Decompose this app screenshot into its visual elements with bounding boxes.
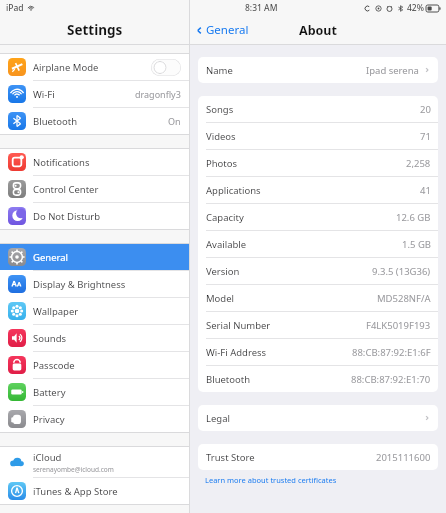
- staticText: iCloud: [33, 451, 62, 464]
- staticText: Available: [206, 238, 247, 251]
- button[interactable]: Available: [198, 231, 438, 257]
- button[interactable]: iCloud: [0, 447, 189, 477]
- staticText: 8:31 AM: [245, 2, 278, 14]
- staticText: iTunes & App Store: [33, 485, 118, 498]
- button[interactable]: Serial Number: [198, 312, 438, 338]
- staticText: General: [33, 251, 69, 264]
- button[interactable]: Songs: [198, 96, 438, 122]
- staticText: Trust Store: [206, 451, 255, 464]
- staticText: Display & Brightness: [33, 278, 126, 291]
- button[interactable]: Wi-Fi: [0, 81, 189, 107]
- button[interactable]: Wi-Fi Address: [198, 339, 438, 365]
- staticText: Do Not Disturb: [33, 210, 101, 223]
- staticText: Notifications: [33, 156, 90, 169]
- button[interactable]: Trust Store: [198, 444, 438, 470]
- staticText: Privacy: [33, 413, 65, 426]
- staticText: serenayombe@icloud.com: [33, 465, 114, 474]
- staticText: Photos: [206, 157, 238, 170]
- staticText: 71: [420, 130, 431, 143]
- button[interactable]: Version: [198, 258, 438, 284]
- staticText: 42%: [407, 2, 424, 14]
- staticText: 41: [420, 184, 431, 197]
- button[interactable]: iTunes & App Store: [0, 478, 189, 504]
- staticText: Songs: [206, 103, 234, 116]
- staticText: Battery: [33, 386, 66, 399]
- staticText: dragonfly3: [135, 88, 181, 100]
- staticText: 9.3.5 (13G36): [372, 265, 431, 278]
- staticText: Learn more about trusted certificates: [205, 475, 337, 485]
- button[interactable]: Applications: [198, 177, 438, 203]
- staticText: Model: [206, 292, 235, 305]
- staticText: Videos: [206, 130, 236, 143]
- staticText: Sounds: [33, 332, 67, 345]
- staticText: MD528NF/A: [377, 292, 431, 305]
- button[interactable]: Do Not Disturb: [0, 203, 189, 229]
- staticText: General: [206, 22, 249, 38]
- button[interactable]: Control Center: [0, 176, 189, 202]
- staticText: Name: [206, 64, 233, 77]
- staticText: 12.6 GB: [396, 211, 431, 224]
- staticText: Bluetooth: [206, 373, 251, 386]
- staticText: 20: [420, 103, 431, 116]
- button[interactable]: Wallpaper: [0, 298, 189, 324]
- staticText: 88:CB:87:92:E1:70: [351, 373, 431, 386]
- staticText: Bluetooth: [33, 115, 78, 128]
- staticText: Serial Number: [206, 319, 271, 332]
- staticText: Control Center: [33, 183, 99, 196]
- staticText: Settings: [67, 21, 123, 39]
- button[interactable]: Photos: [198, 150, 438, 176]
- staticText: Ipad serena: [366, 64, 419, 77]
- button[interactable]: Capacity: [198, 204, 438, 230]
- staticText: Applications: [206, 184, 261, 197]
- staticText: Wallpaper: [33, 305, 79, 318]
- staticText: Passcode: [33, 359, 75, 372]
- button[interactable]: Learn more about trusted certificates: [205, 475, 446, 485]
- staticText: 2,258: [406, 157, 431, 170]
- staticText: About: [299, 22, 337, 39]
- button[interactable]: Sounds: [0, 325, 189, 351]
- staticText: Wi-Fi: [33, 88, 55, 101]
- staticText: On: [168, 115, 181, 127]
- staticText: Legal: [206, 412, 230, 425]
- staticText: F4LK5019F193: [366, 319, 431, 332]
- staticText: Wi-Fi Address: [206, 346, 267, 359]
- button[interactable]: Airplane Mode toggle: [151, 59, 181, 76]
- staticText: Capacity: [206, 211, 244, 224]
- button[interactable]: General: [194, 22, 249, 38]
- button[interactable]: Model: [198, 285, 438, 311]
- staticText: 2015111600: [376, 451, 431, 464]
- staticText: 88:CB:87:92:E1:6F: [352, 346, 431, 359]
- button[interactable]: Privacy: [0, 406, 189, 432]
- staticText: iPad: [6, 2, 24, 14]
- button[interactable]: Notifications: [0, 149, 189, 175]
- button[interactable]: Videos: [198, 123, 438, 149]
- staticText: Version: [206, 265, 240, 278]
- button[interactable]: Name: [198, 57, 438, 83]
- button[interactable]: Legal: [198, 405, 438, 431]
- button[interactable]: Bluetooth: [0, 108, 189, 134]
- button[interactable]: Display & Brightness: [0, 271, 189, 297]
- button[interactable]: Passcode: [0, 352, 189, 378]
- button[interactable]: Bluetooth: [198, 366, 438, 392]
- button[interactable]: Airplane Mode: [0, 54, 189, 80]
- button[interactable]: General: [0, 244, 189, 270]
- staticText: Airplane Mode: [33, 61, 99, 74]
- button[interactable]: Battery: [0, 379, 189, 405]
- staticText: 1.5 GB: [402, 238, 431, 251]
